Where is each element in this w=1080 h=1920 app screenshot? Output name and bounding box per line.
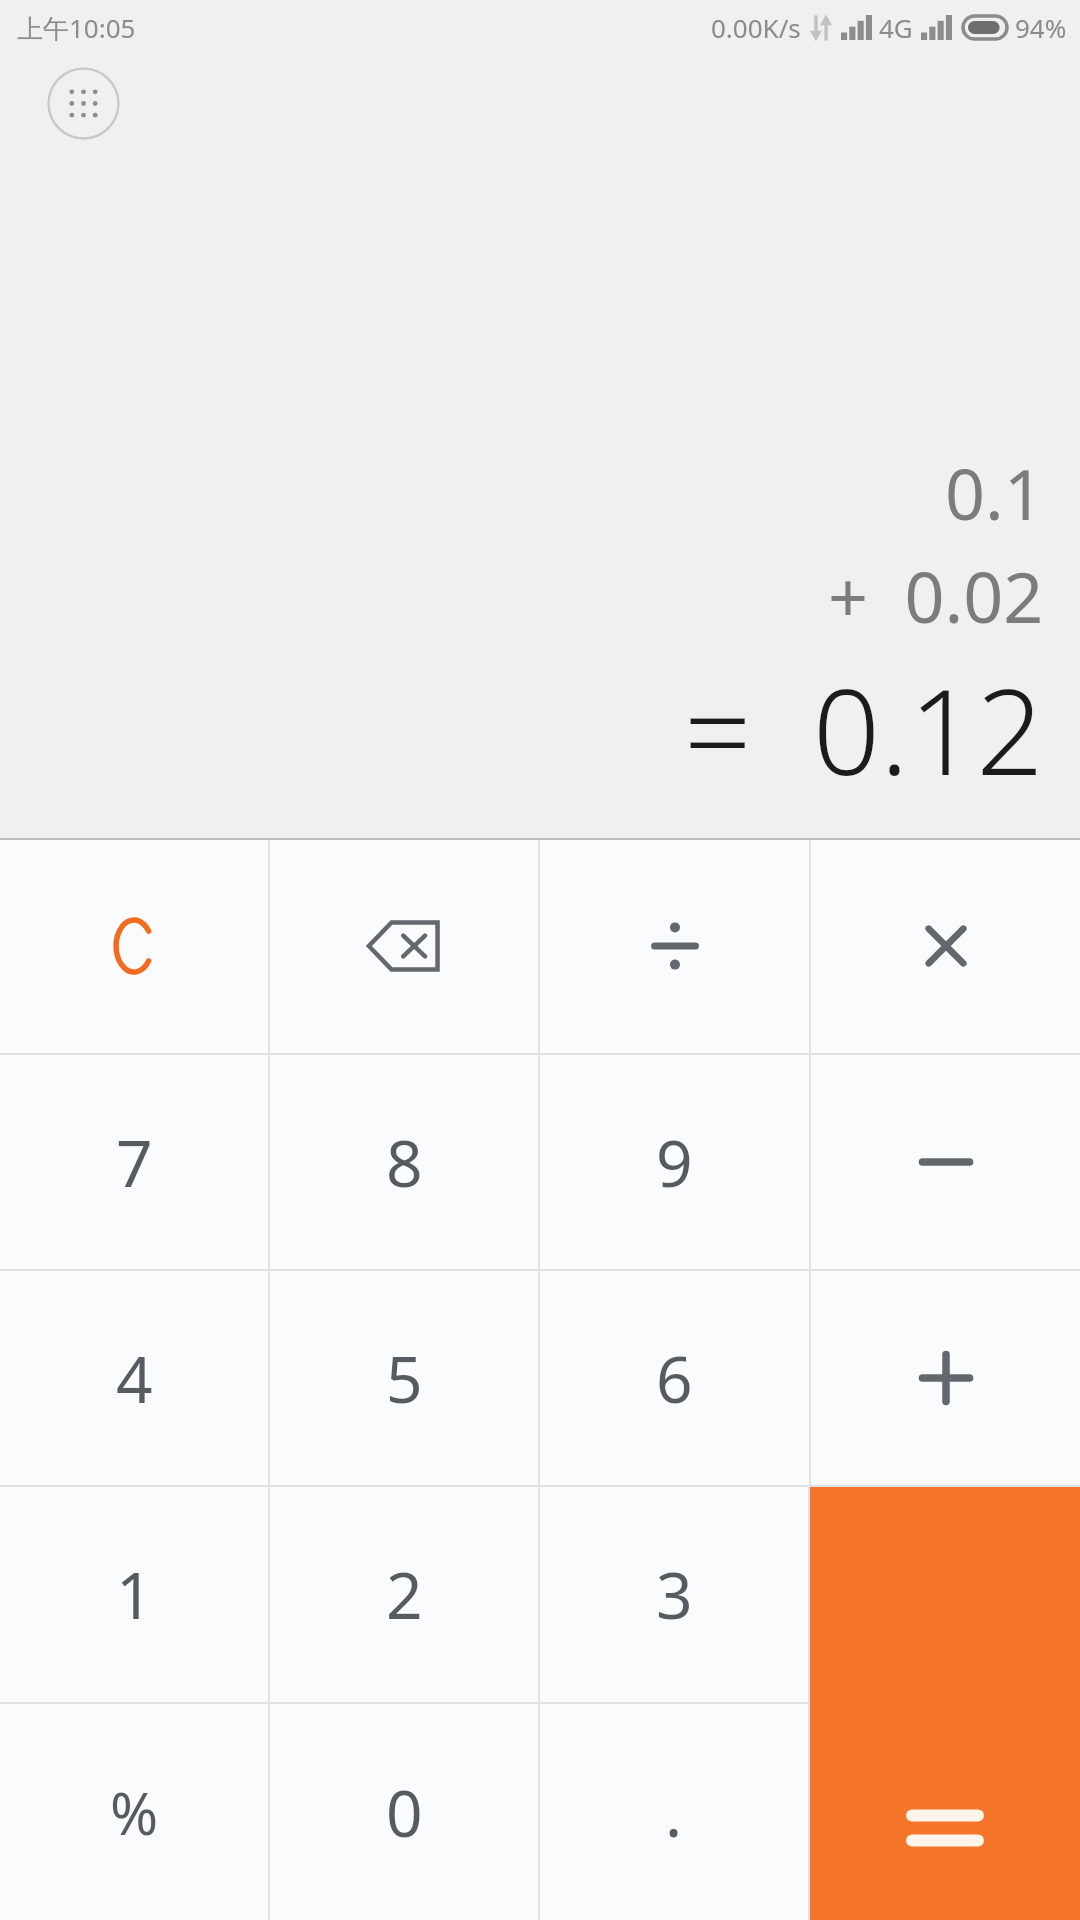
staticText: 1 [116,1551,153,1638]
staticText: 0 [386,1769,423,1856]
staticText: 2 [386,1551,423,1638]
staticText: 8 [386,1119,423,1206]
button[interactable]: 0 [270,1704,538,1920]
button[interactable]: Clear [0,838,268,1053]
staticText: + 0.02 [828,548,1044,643]
staticText: % [110,1773,159,1852]
button[interactable]: 7 [0,1055,268,1269]
button[interactable]: Backspace [270,838,538,1053]
staticText: 上午10:05 [17,10,136,46]
button[interactable]: Multiply [811,838,1080,1053]
button[interactable]: 9 [540,1055,809,1269]
button[interactable]: 5 [270,1271,538,1485]
staticText: 0.1 [945,445,1044,540]
button[interactable]: 1 [0,1487,268,1702]
staticText: 0.00K/s [711,10,801,45]
button[interactable]: Divide [540,838,809,1053]
button[interactable]: Apps [47,67,120,140]
staticText: = 0.12 [684,649,1044,810]
button[interactable]: 3 [540,1487,808,1702]
staticText: 4 [116,1335,153,1422]
button[interactable]: . [540,1704,808,1920]
button[interactable]: Equals [810,1487,1080,1920]
button[interactable]: 6 [540,1271,809,1485]
staticText: 3 [656,1551,693,1638]
staticText: 94% [1015,10,1067,45]
button[interactable]: Minus [811,1055,1080,1269]
button[interactable]: 8 [270,1055,538,1269]
staticText: 6 [656,1335,693,1422]
button[interactable]: 2 [270,1487,538,1702]
staticText: 9 [656,1119,693,1206]
button[interactable]: % [0,1704,268,1920]
staticText: . [665,1769,683,1856]
button[interactable]: Plus [811,1271,1080,1485]
button[interactable]: 4 [0,1271,268,1485]
staticText: 4G [879,10,913,45]
staticText: 7 [116,1119,153,1206]
staticText: 5 [386,1335,423,1422]
